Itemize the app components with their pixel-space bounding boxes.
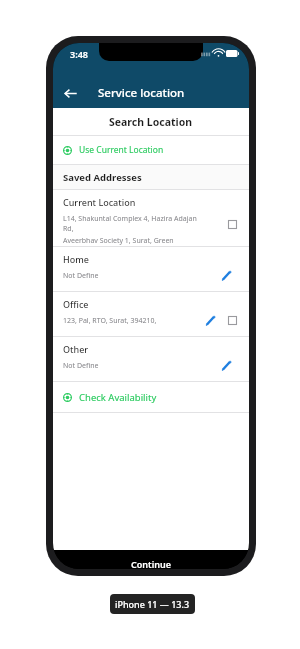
button[interactable]: Select Current Location: [224, 216, 240, 232]
staticText: Service location: [98, 85, 185, 101]
staticText: Current Location: [63, 196, 136, 208]
button[interactable]: Edit Other: [218, 357, 234, 373]
button[interactable]: Current Location: [53, 190, 249, 246]
button[interactable]: Edit Office: [202, 312, 218, 328]
staticText: Continue: [131, 558, 171, 569]
staticText: Not Define: [63, 271, 99, 281]
staticText: Other: [63, 343, 89, 355]
button[interactable]: Check Availability: [53, 382, 249, 412]
button[interactable]: Search Location: [53, 108, 249, 135]
staticText: L14, Shakuntal Complex 4, Hazira Adajan …: [63, 214, 199, 234]
button[interactable]: Select Office: [224, 312, 240, 328]
staticText: Office: [63, 298, 89, 310]
staticText: Aveerbhav Society 1, Surat, Green Enclav…: [63, 236, 199, 246]
staticText: 3:48: [70, 48, 88, 60]
staticText: iPhone 11 — 13.3: [115, 598, 190, 610]
staticText: Search Location: [109, 115, 193, 129]
button[interactable]: Use Current Location: [53, 136, 249, 164]
staticText: Not Define: [63, 361, 99, 371]
staticText: Saved Addresses: [63, 171, 142, 184]
staticText: Home: [63, 253, 89, 265]
button[interactable]: Other: [53, 337, 249, 381]
button[interactable]: Continue: [117, 556, 185, 569]
button[interactable]: Office: [53, 292, 249, 336]
staticText: Use Current Location: [79, 144, 164, 156]
staticText: 123, Pal, RTO, Surat, 394210,: [63, 316, 157, 326]
button[interactable]: Back: [53, 78, 87, 108]
staticText: Check Availability: [79, 391, 157, 404]
button[interactable]: Edit Home: [218, 267, 234, 283]
button[interactable]: Home: [53, 247, 249, 291]
